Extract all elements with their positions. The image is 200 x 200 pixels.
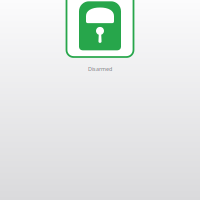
button[interactable]: Disarmed, tap to arm <box>66 0 133 57</box>
staticText: Disarmed <box>88 65 112 73</box>
